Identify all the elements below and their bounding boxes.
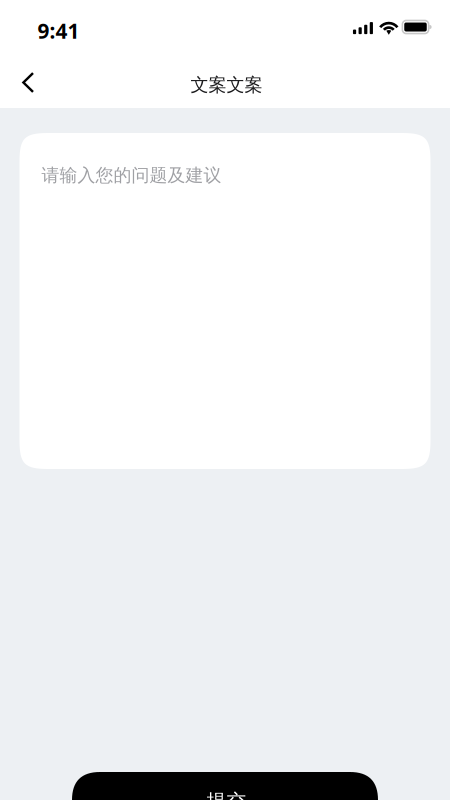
staticText: 9:41 xyxy=(37,16,79,45)
button[interactable]: Back xyxy=(5,59,51,105)
button[interactable]: 提交 xyxy=(72,772,378,800)
staticText: 请输入您的问题及建议 xyxy=(41,164,221,186)
staticText: 提交 xyxy=(206,789,246,800)
staticText: 文案文案 xyxy=(190,74,262,96)
button[interactable]: 请输入您的问题及建议 xyxy=(19,133,430,469)
